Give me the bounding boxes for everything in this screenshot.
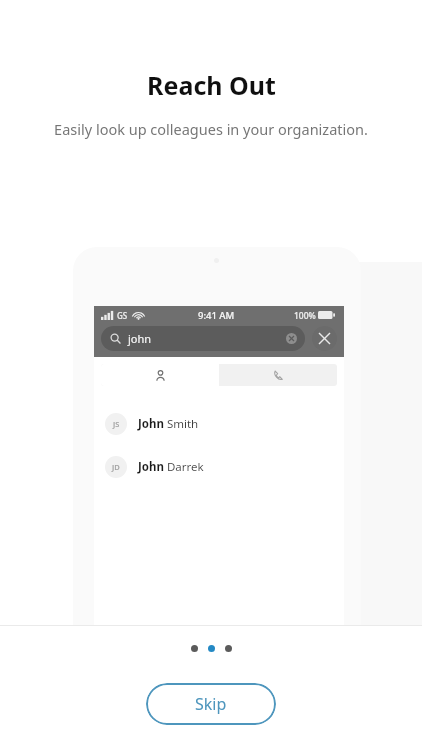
- staticText: john: [128, 331, 152, 346]
- staticText: JD: [112, 462, 120, 472]
- button[interactable]: JS: [105, 407, 344, 441]
- button[interactable]: JD: [105, 450, 344, 484]
- staticText: John Darrek: [138, 459, 204, 475]
- staticText: Easily look up colleagues in your organi…: [54, 119, 368, 139]
- staticText: 100%: [294, 310, 316, 322]
- staticText: 9:41 AM: [198, 309, 235, 322]
- staticText: GS: [117, 310, 128, 321]
- button[interactable]: Skip: [146, 683, 276, 725]
- button[interactable]: Calls: [219, 364, 337, 386]
- button[interactable]: People: [101, 364, 219, 386]
- staticText: Skip: [195, 693, 227, 715]
- staticText: JS: [113, 419, 120, 429]
- button[interactable]: Clear text: [286, 333, 297, 344]
- button[interactable]: john: [101, 326, 305, 351]
- staticText: John Smith: [138, 416, 199, 432]
- button[interactable]: Close search: [312, 326, 337, 351]
- staticText: Reach Out: [147, 68, 276, 102]
